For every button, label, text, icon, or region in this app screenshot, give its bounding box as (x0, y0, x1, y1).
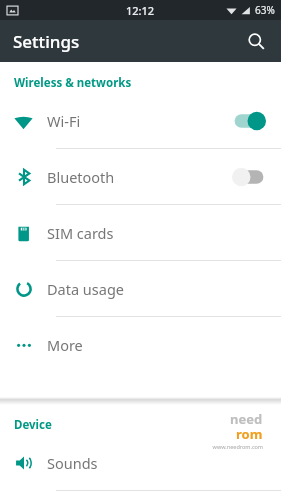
button[interactable]: Off (231, 166, 267, 188)
button[interactable]: More (0, 317, 281, 373)
staticText: SIM cards (47, 223, 281, 243)
button[interactable]: Search (239, 24, 273, 58)
staticText: Bluetooth (47, 167, 231, 187)
staticText: More (47, 335, 281, 355)
staticText: Device (14, 417, 52, 433)
button[interactable]: Sounds (0, 435, 281, 491)
staticText: Wireless & networks (14, 75, 132, 91)
staticText: Sounds (47, 453, 281, 473)
staticText: Wi-Fi (47, 111, 231, 131)
staticText: need (230, 410, 263, 428)
staticText: rom (236, 425, 263, 443)
button[interactable]: Bluetooth (0, 149, 281, 205)
staticText: www.needrom.com (212, 443, 263, 450)
staticText: Data usage (47, 279, 281, 299)
button[interactable]: On (231, 110, 267, 132)
staticText: 12:12 (126, 3, 155, 18)
staticText: Settings (13, 30, 80, 53)
button[interactable]: Wi-Fi (0, 93, 281, 149)
staticText: 63% (255, 3, 275, 17)
button[interactable]: SIM cards (0, 205, 281, 261)
button[interactable]: Data usage (0, 261, 281, 317)
